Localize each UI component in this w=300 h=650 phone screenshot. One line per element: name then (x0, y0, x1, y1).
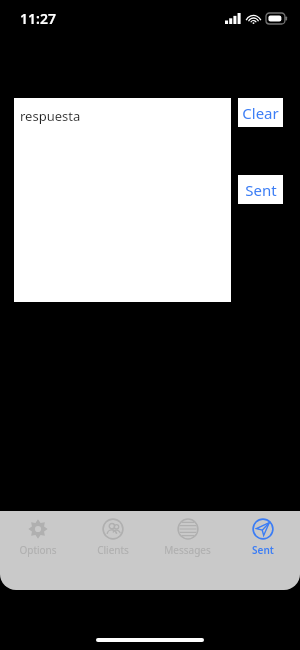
staticText: Clear (242, 103, 279, 123)
staticText: Messages (164, 543, 211, 557)
button[interactable]: Clients (75, 511, 150, 557)
staticText: 11:27 (20, 9, 56, 28)
staticText: Clients (97, 543, 129, 557)
button[interactable]: Options (0, 511, 75, 557)
staticText: Sent (245, 180, 277, 200)
button[interactable]: respuesta (14, 98, 231, 302)
staticText: respuesta (20, 107, 81, 125)
button[interactable]: Clear (238, 98, 283, 127)
button[interactable]: Messages (150, 511, 225, 557)
staticText: Sent (252, 543, 274, 557)
button[interactable]: Sent (238, 175, 283, 204)
button[interactable]: Sent (225, 511, 300, 557)
staticText: Options (19, 543, 57, 557)
